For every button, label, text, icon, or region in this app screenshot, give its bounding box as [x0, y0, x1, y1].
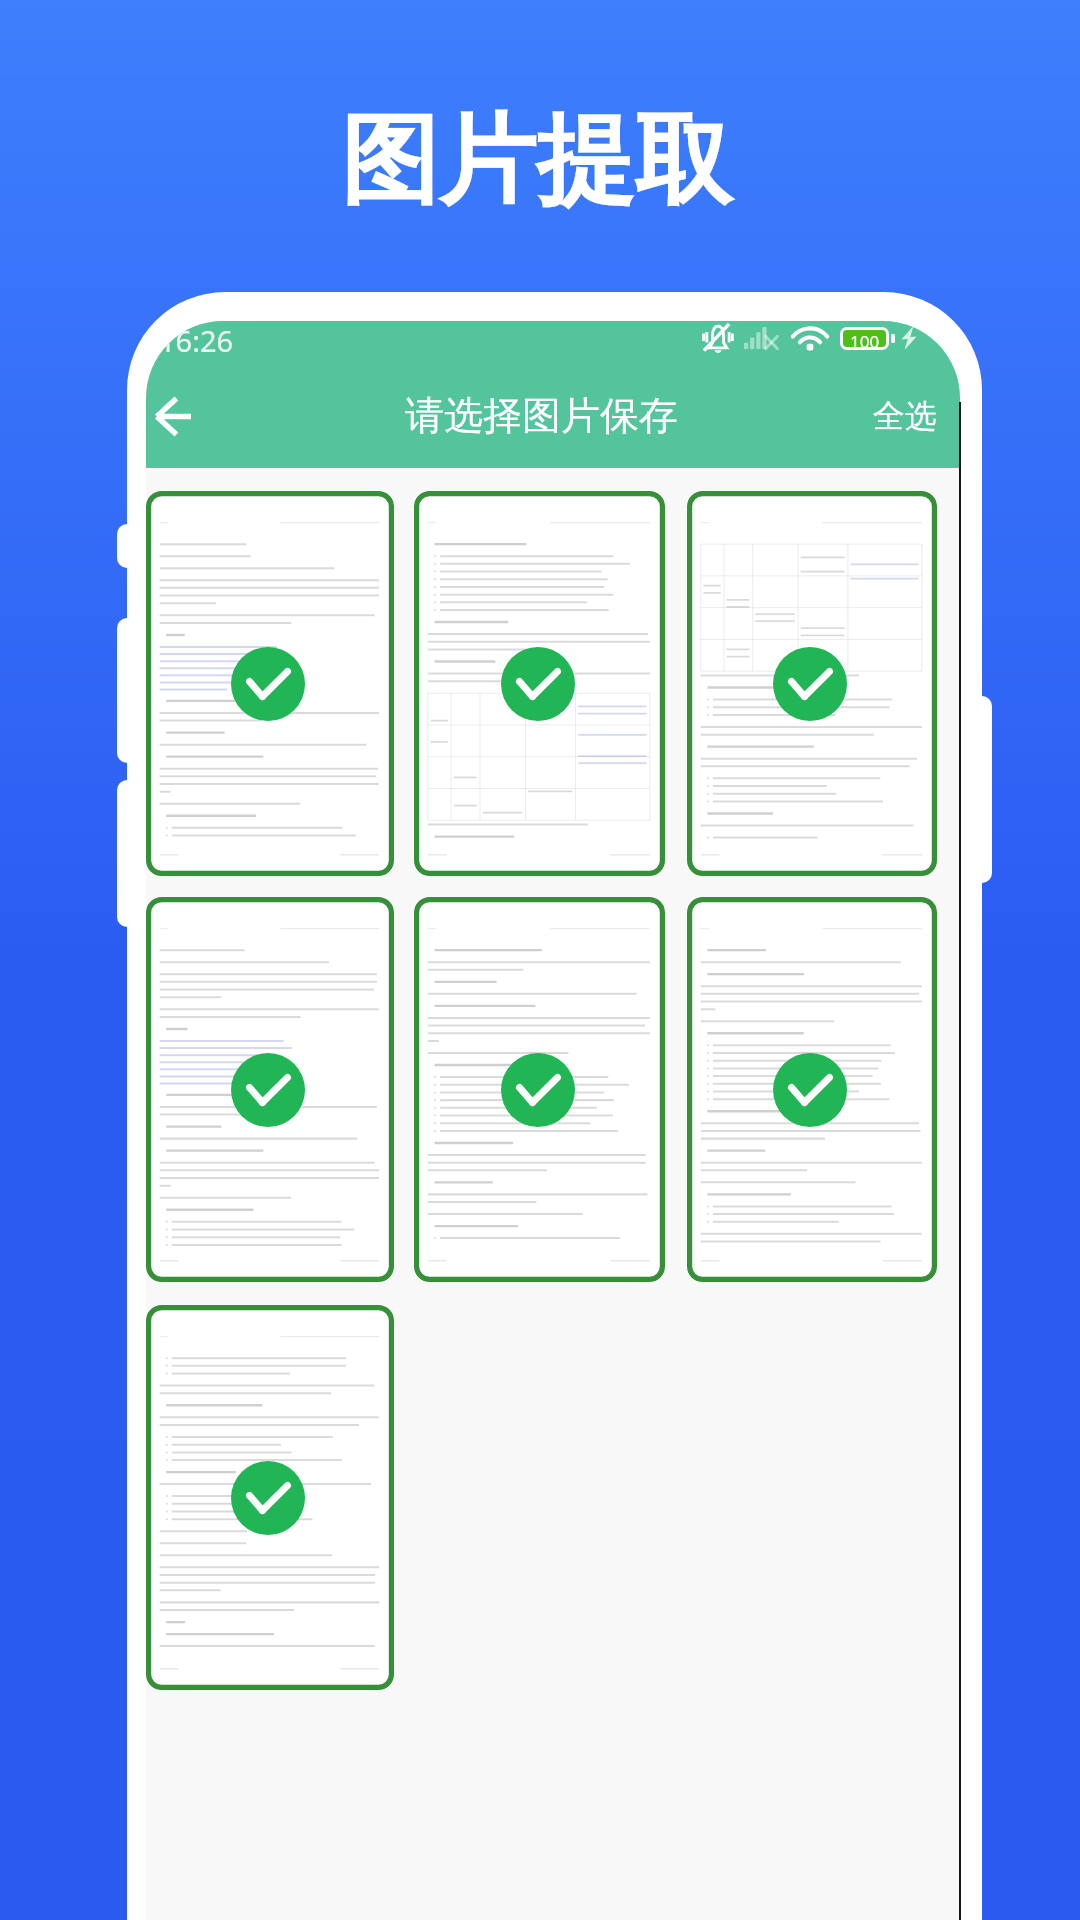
button[interactable]: Back	[146, 379, 209, 453]
staticText: 全选	[873, 396, 937, 436]
button[interactable]: 全选	[863, 388, 960, 444]
staticText: 请选择图片保存	[405, 391, 678, 440]
staticText: 图片提取	[0, 100, 1076, 223]
button[interactable]: Selected document 1	[146, 491, 394, 876]
button[interactable]: Selected document 7	[146, 1305, 394, 1690]
button[interactable]: Selected document 5	[414, 897, 665, 1282]
button[interactable]: Selected document 6	[687, 897, 937, 1282]
staticText: 16:26	[159, 321, 234, 354]
button[interactable]: Selected document 2	[414, 491, 665, 876]
button[interactable]: Selected document 3	[687, 491, 937, 876]
staticText: 100	[850, 330, 880, 347]
button[interactable]: Selected document 4	[146, 897, 394, 1282]
